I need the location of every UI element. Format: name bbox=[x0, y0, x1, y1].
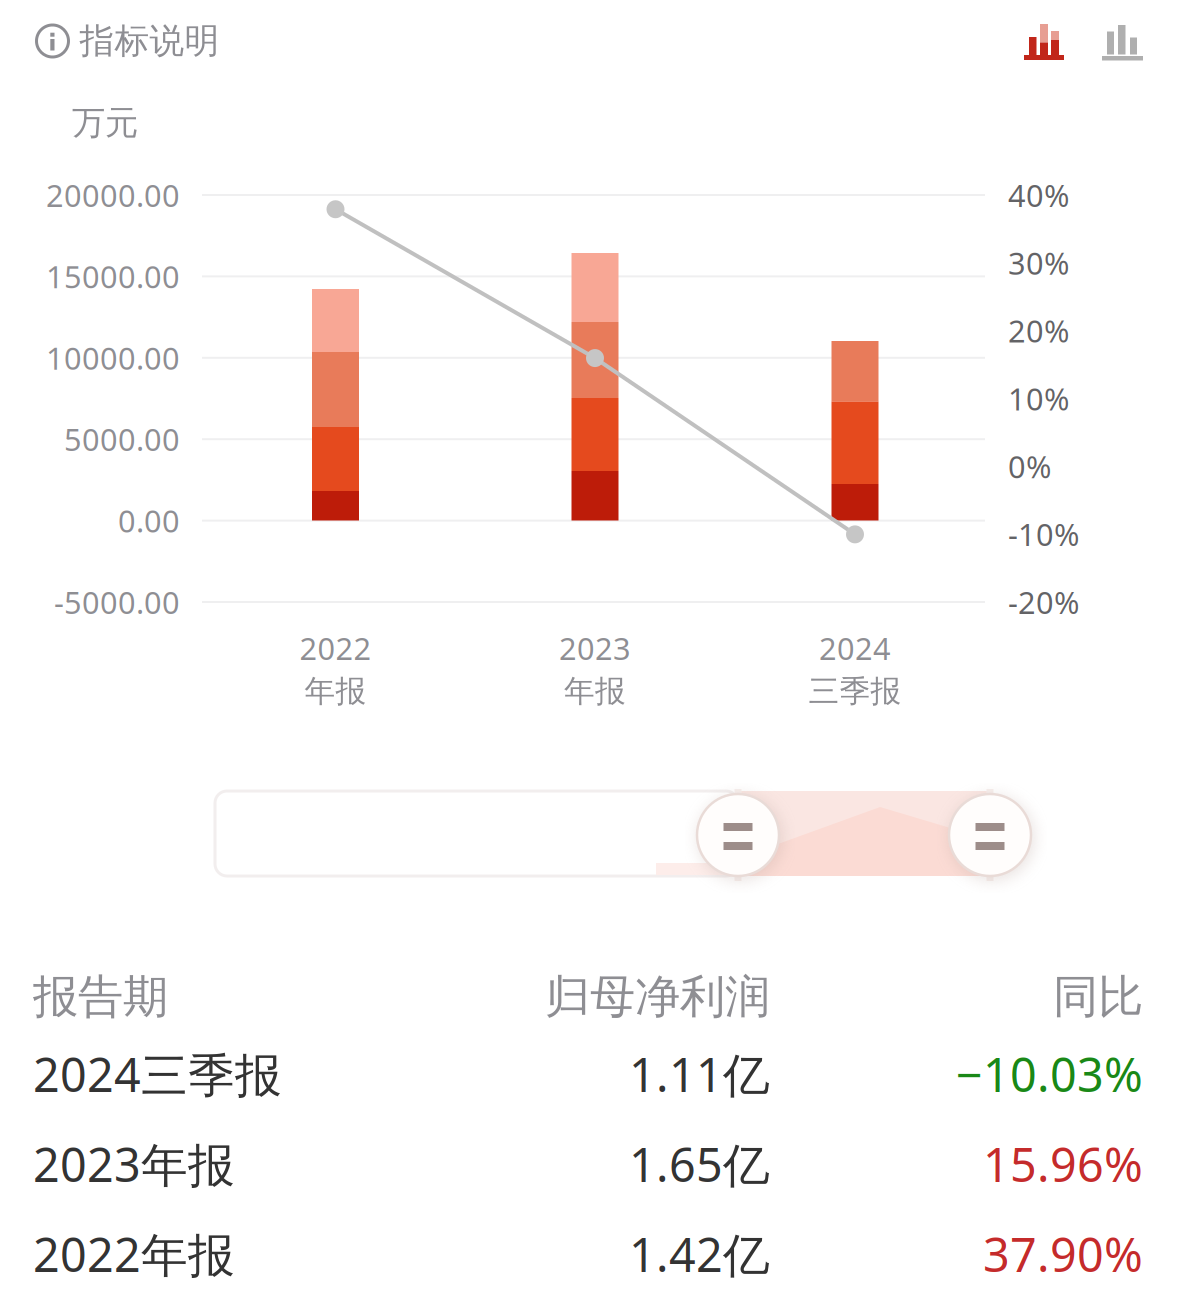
button[interactable]: Grouped bar chart bbox=[1102, 20, 1143, 60]
staticText: 2023年报 bbox=[33, 1133, 235, 1195]
staticText: -10% bbox=[1008, 514, 1079, 554]
staticText: 37.90% bbox=[983, 1223, 1143, 1285]
staticText: 2022 bbox=[299, 628, 371, 668]
staticText: 2024三季报 bbox=[33, 1043, 282, 1105]
staticText: 0% bbox=[1008, 446, 1051, 487]
staticText: 2024 bbox=[819, 628, 891, 668]
staticText: -5000.00 bbox=[54, 582, 180, 622]
staticText: 年报 bbox=[304, 672, 366, 710]
staticText: 三季报 bbox=[808, 672, 901, 710]
staticText: 5000.00 bbox=[64, 419, 180, 459]
staticText: 1.11亿 bbox=[629, 1043, 770, 1105]
staticText: 15.96% bbox=[983, 1133, 1143, 1195]
staticText: 指标说明 bbox=[79, 20, 219, 62]
staticText: 15000.00 bbox=[46, 256, 180, 297]
staticText: 万元 bbox=[72, 102, 138, 143]
staticText: 报告期 bbox=[33, 969, 168, 1025]
button[interactable]: 指标说明 bbox=[36, 20, 219, 62]
staticText: 归母净利润 bbox=[545, 969, 770, 1025]
staticText: 0.00 bbox=[118, 500, 180, 541]
staticText: 1.42亿 bbox=[629, 1223, 770, 1285]
staticText: 年报 bbox=[564, 672, 626, 710]
staticText: 2023 bbox=[559, 628, 631, 668]
staticText: −10.03% bbox=[956, 1043, 1143, 1105]
staticText: 1.65亿 bbox=[629, 1133, 770, 1195]
staticText: 40% bbox=[1008, 175, 1069, 215]
staticText: 10000.00 bbox=[46, 337, 180, 378]
staticText: 20% bbox=[1008, 310, 1069, 351]
staticText: 同比 bbox=[1053, 969, 1143, 1025]
staticText: 30% bbox=[1008, 242, 1069, 283]
button[interactable]: Stacked bar chart bbox=[1024, 20, 1064, 60]
staticText: -20% bbox=[1008, 582, 1079, 622]
staticText: 10% bbox=[1008, 378, 1069, 419]
staticText: 20000.00 bbox=[46, 175, 180, 215]
staticText: 2022年报 bbox=[33, 1223, 235, 1285]
